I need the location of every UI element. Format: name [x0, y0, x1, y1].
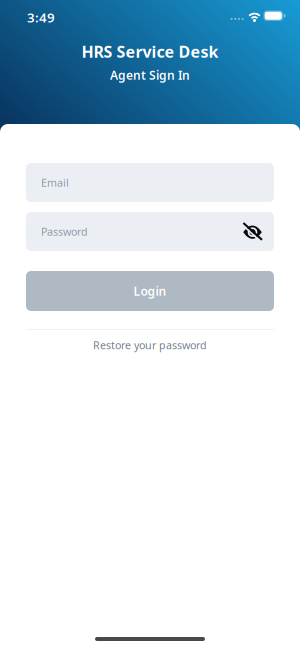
staticText: 3:49	[27, 8, 55, 26]
button[interactable]	[243, 223, 262, 240]
staticText: HRS Service Desk	[81, 41, 218, 62]
button[interactable]: Login	[26, 271, 274, 311]
staticText: Login	[133, 283, 166, 299]
button[interactable]: Restore your password	[93, 338, 207, 352]
staticText: Password	[41, 224, 88, 239]
staticText: Email	[41, 175, 69, 190]
button[interactable]: Email	[26, 163, 274, 202]
staticText: Agent Sign In	[110, 67, 190, 83]
staticText: Restore your password	[93, 338, 207, 352]
button[interactable]: Password	[26, 212, 274, 251]
